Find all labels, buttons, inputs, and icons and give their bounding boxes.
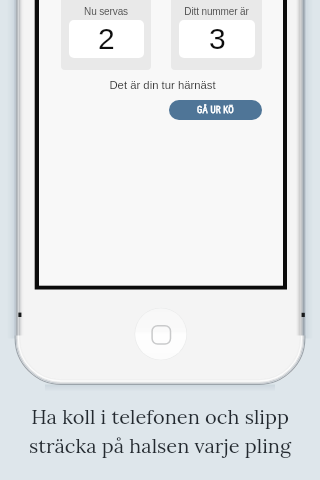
button[interactable]: Nu servas (61, 0, 151, 70)
staticText: Ha koll i telefonen och slipp sträcka på… (0, 404, 320, 458)
staticText: Ditt nummer är (171, 6, 262, 17)
staticText: Nu servas (61, 6, 151, 17)
staticText: GÅ UR KÖ (197, 105, 235, 116)
staticText: Det är din tur härnäst (62, 79, 263, 92)
button[interactable]: Ditt nummer är (171, 0, 262, 70)
staticText: 2 (98, 22, 115, 56)
staticText: 3 (209, 22, 226, 56)
button[interactable]: GÅ UR KÖ (169, 100, 262, 120)
